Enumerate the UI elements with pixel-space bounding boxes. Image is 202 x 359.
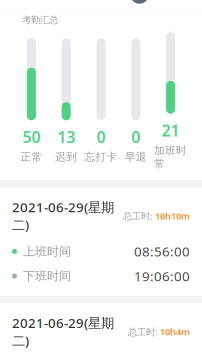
staticText: 迟到 <box>55 150 77 164</box>
staticText: 2021-06-29(星期二) <box>12 198 114 233</box>
staticText: 21 <box>162 120 180 141</box>
staticText: 上班时间 <box>23 244 71 259</box>
button[interactable]: 2021-06-29(星期二) <box>0 303 202 359</box>
staticText: 10h4m <box>160 325 190 338</box>
staticText: 2021-06-29(星期二) <box>12 314 114 349</box>
button[interactable]: 2021-06-29(星期二) <box>0 187 202 296</box>
staticText: 0 <box>96 126 105 147</box>
staticText: 下班时间 <box>23 269 71 283</box>
staticText: 总工时: <box>123 210 155 222</box>
staticText: 08:56:00 <box>134 242 190 260</box>
staticText: 50 <box>22 126 40 147</box>
staticText: 正常 <box>20 150 42 164</box>
staticText: 早退 <box>125 150 147 164</box>
staticText: 考勤汇总 <box>22 14 58 26</box>
staticText: 忘打卡 <box>84 150 117 164</box>
staticText: 0 <box>131 126 140 147</box>
button[interactable]: 王恩祥 <box>130 0 190 4</box>
staticText: 13 <box>57 126 75 147</box>
staticText: 10h10m <box>155 210 190 222</box>
staticText: 加班时常 <box>154 144 187 170</box>
staticText: 19:06:00 <box>134 267 190 285</box>
staticText: 总工时: <box>128 325 160 338</box>
